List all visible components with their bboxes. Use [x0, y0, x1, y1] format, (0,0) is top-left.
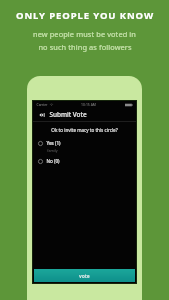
staticText: No (0)	[46, 158, 60, 164]
staticText: Carrier	[36, 102, 48, 107]
staticText: vote	[79, 273, 90, 279]
button[interactable]: No (0)	[33, 158, 136, 164]
button[interactable]: vote	[34, 269, 135, 282]
staticText: new people must be voted in	[33, 29, 136, 39]
staticText: 10:15 AM	[81, 102, 96, 107]
staticText: no such thing as followers	[38, 42, 132, 52]
staticText: Ok to invite macy to this circle?	[51, 127, 118, 133]
staticText: family	[47, 148, 58, 153]
staticText: ONLY PEOPLE YOU KNOW	[16, 9, 154, 22]
button[interactable]: Yes (1)	[33, 140, 136, 153]
staticText: Submit Vote	[49, 110, 87, 119]
button[interactable]: Back	[37, 110, 46, 119]
staticText: Yes (1)	[46, 140, 61, 146]
